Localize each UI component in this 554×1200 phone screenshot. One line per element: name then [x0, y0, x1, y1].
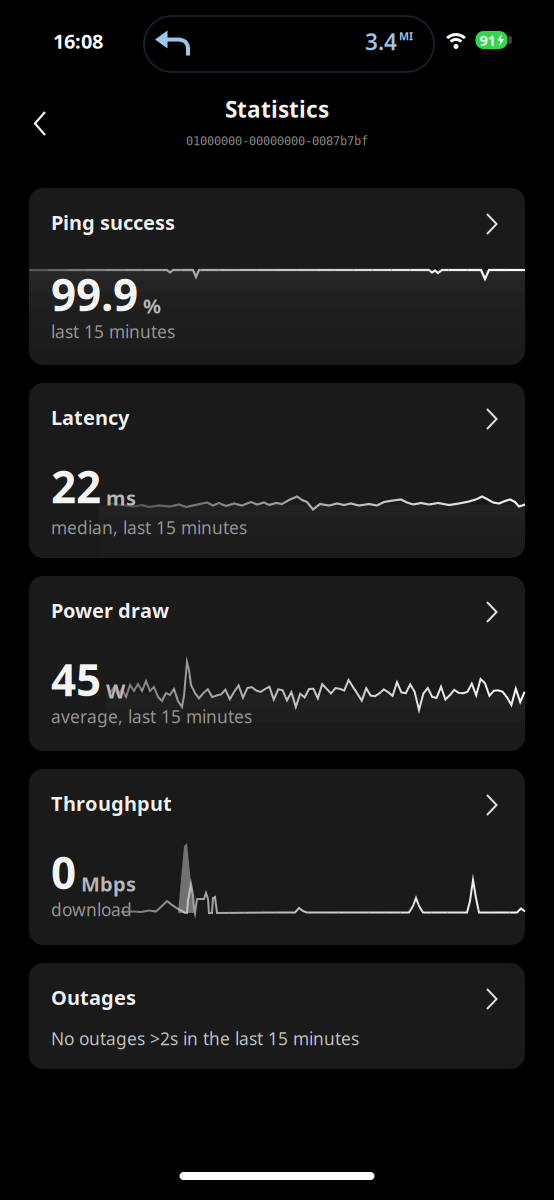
button[interactable]: 45 [29, 576, 525, 751]
staticText: 16:08 [53, 28, 103, 54]
button[interactable]: No outages >2s in the last 15 minutes [29, 963, 525, 1069]
staticText: 99.9 [51, 265, 138, 323]
button[interactable]: 22 [29, 383, 525, 558]
staticText: Throughput [51, 790, 172, 817]
staticText: 01000000-00000000-0087b7bf [186, 134, 368, 148]
button[interactable]: 0 [29, 769, 525, 945]
staticText: W [106, 677, 125, 704]
button[interactable]: Return to previous app [144, 16, 434, 72]
staticText: 3.4 [365, 26, 397, 56]
staticText: No outages >2s in the last 15 minutes [51, 1027, 359, 1050]
staticText: Outages [51, 984, 136, 1011]
staticText: last 15 minutes [51, 320, 175, 343]
staticText: Mbps [81, 870, 136, 897]
staticText: median, last 15 minutes [51, 516, 247, 539]
staticText: download [51, 898, 132, 921]
staticText: ms [106, 484, 136, 511]
staticText: % [143, 292, 161, 319]
staticText: Ping success [51, 209, 175, 236]
staticText: 0 [51, 843, 76, 901]
staticText: Statistics [225, 94, 329, 124]
staticText: average, last 15 minutes [51, 705, 252, 728]
staticText: 91 [479, 30, 495, 50]
staticText: 45 [51, 650, 101, 708]
staticText: MI [399, 29, 413, 43]
staticText: 22 [51, 457, 101, 515]
staticText: Latency [51, 404, 129, 431]
button[interactable]: Back [29, 110, 53, 137]
staticText: Power draw [51, 597, 169, 624]
button[interactable]: 99.9 [29, 188, 525, 365]
